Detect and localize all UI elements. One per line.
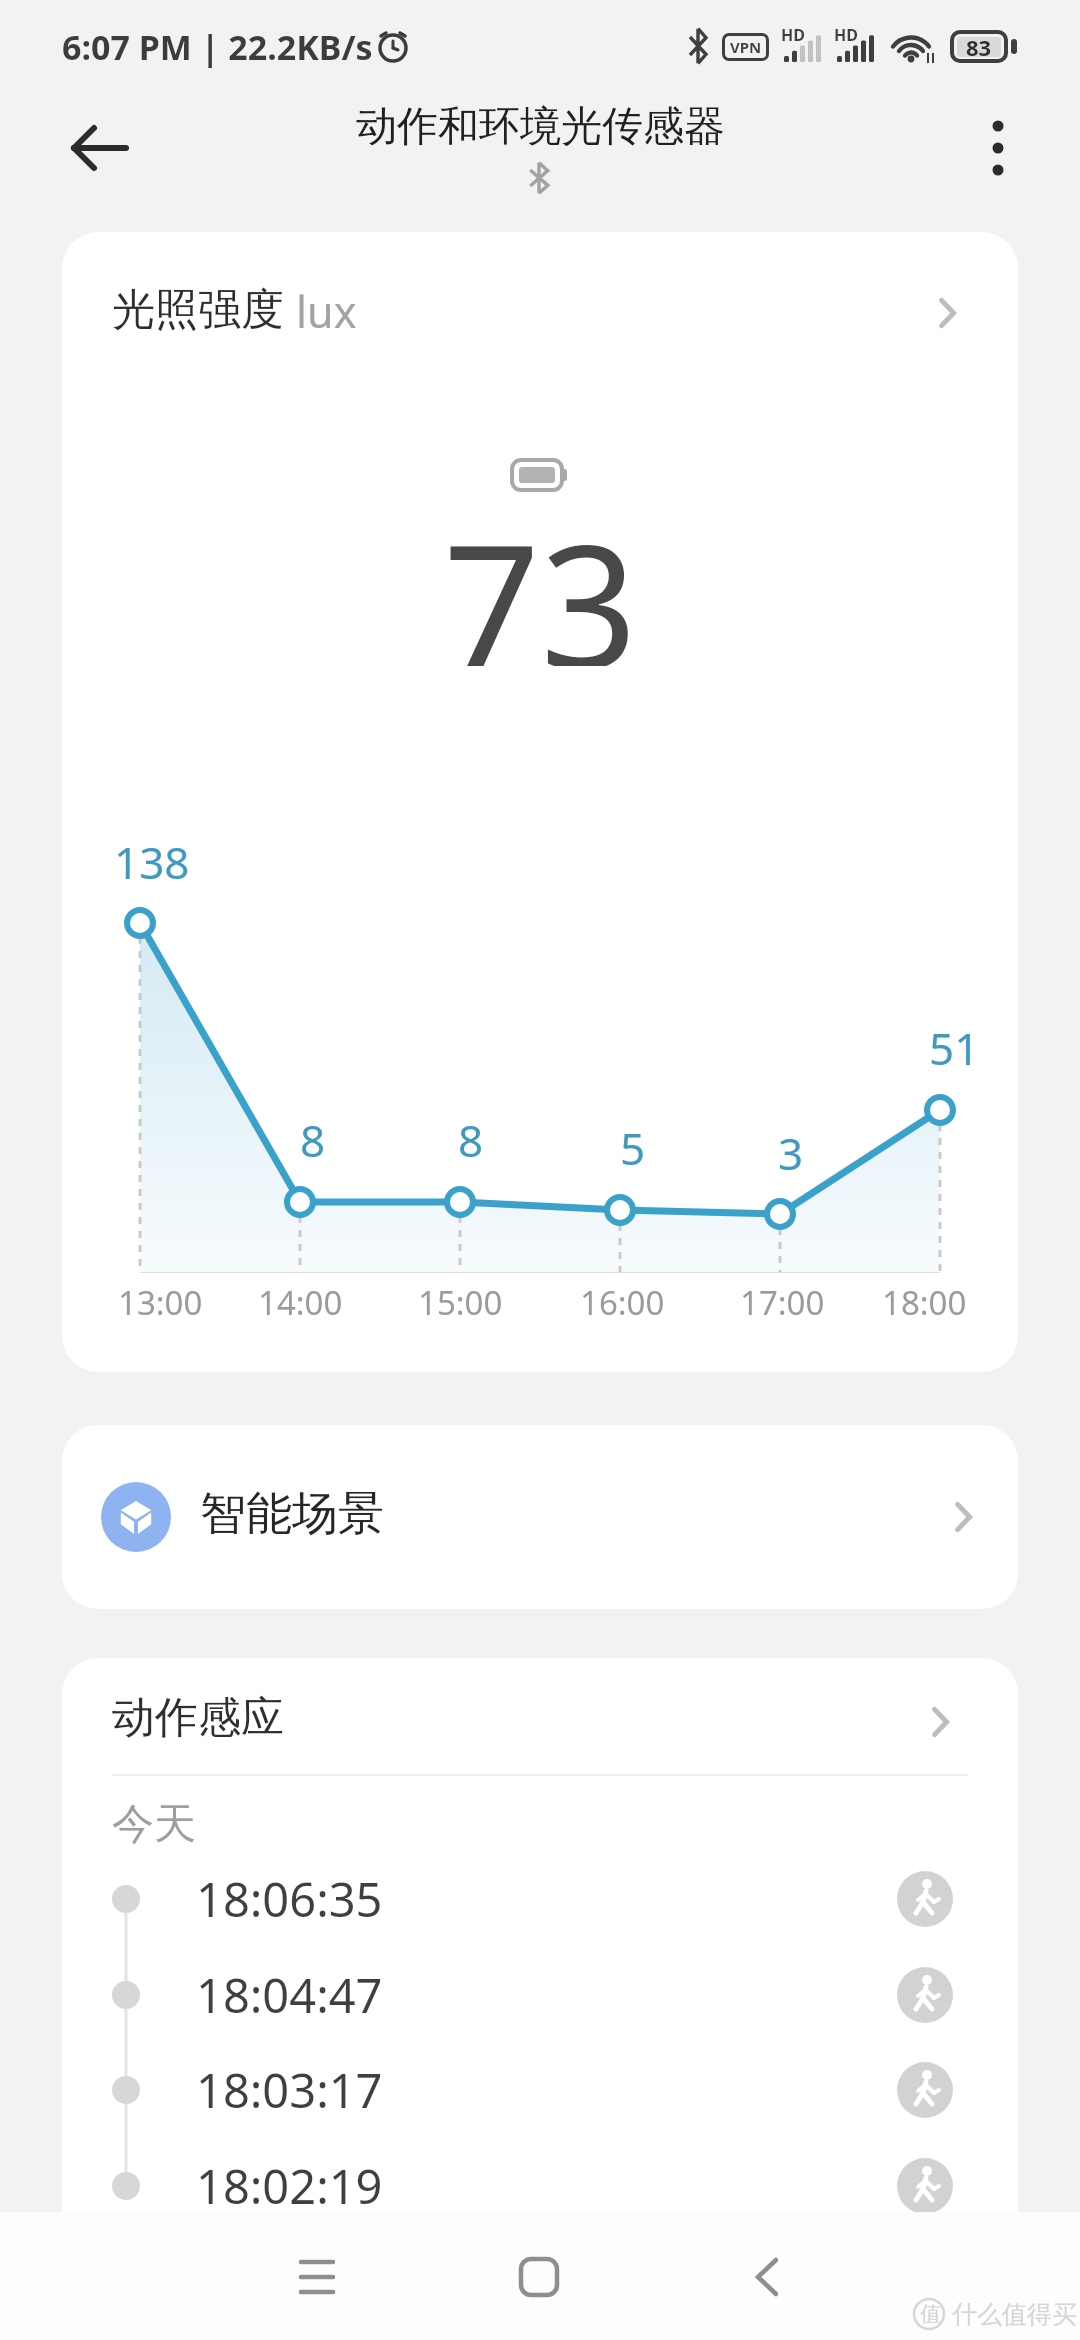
staticText: 5 (620, 1118, 646, 1170)
staticText: 今天 (112, 1798, 196, 1850)
staticText: 18:06:35 (196, 1867, 383, 1931)
staticText: 6:07 PM | 22.2KB/s (62, 24, 373, 70)
staticText: 18:04:47 (196, 1963, 383, 2027)
staticText: VPN (730, 37, 762, 57)
button[interactable] (494, 2232, 584, 2322)
button[interactable] (62, 252, 1018, 372)
button[interactable] (56, 104, 144, 192)
staticText: 17:00 (740, 1280, 825, 1322)
button[interactable] (272, 2232, 362, 2322)
button[interactable] (62, 1425, 1018, 1609)
staticText: 动作感应 (112, 1691, 284, 1745)
staticText: 8 (300, 1110, 326, 1162)
staticText: 51 (929, 1018, 980, 1070)
staticText: 18:00 (882, 1280, 967, 1322)
staticText: HD (834, 24, 858, 46)
button[interactable] (954, 104, 1042, 192)
button[interactable] (62, 1951, 1018, 2039)
staticText: 值 (920, 2301, 941, 2327)
button[interactable] (62, 1676, 1018, 1772)
staticText: 什么值得买 (952, 2299, 1077, 2330)
staticText: lux (296, 282, 357, 338)
staticText: 16:00 (580, 1280, 665, 1322)
staticText: 14:00 (258, 1280, 343, 1322)
staticText: 8 (458, 1110, 484, 1162)
staticText: 光照强度 (112, 283, 284, 337)
staticText: 13:00 (118, 1280, 203, 1322)
staticText: 15:00 (418, 1280, 503, 1322)
staticText: 83 (966, 32, 992, 62)
staticText: 138 (114, 832, 190, 884)
button[interactable] (62, 2142, 1018, 2230)
button[interactable] (62, 2046, 1018, 2134)
staticText: HD (781, 24, 805, 46)
staticText: 18:02:19 (196, 2154, 383, 2218)
button[interactable] (722, 2232, 812, 2322)
staticText: 18:03:17 (196, 2058, 383, 2122)
staticText: 73 (443, 486, 638, 666)
staticText: 3 (778, 1123, 804, 1175)
staticText: 智能场景 (200, 1485, 384, 1541)
staticText: 动作和环境光传感器 (356, 101, 725, 153)
button[interactable] (62, 1855, 1018, 1943)
